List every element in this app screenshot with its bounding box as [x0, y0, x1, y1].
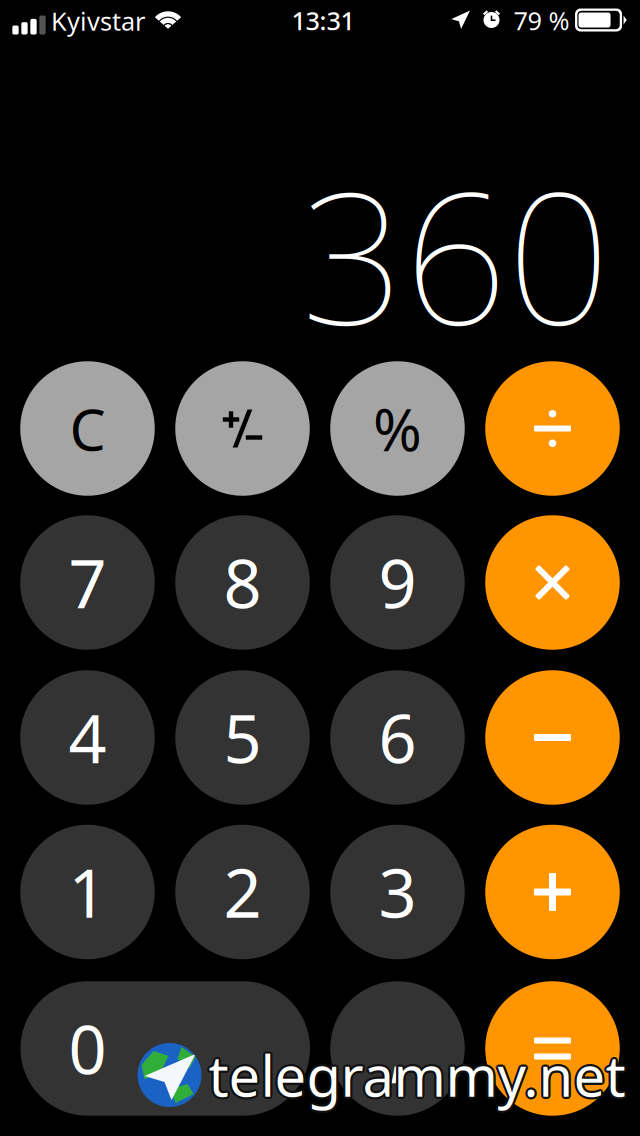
staticText: telegrammy.net [208, 1040, 625, 1114]
staticText: 6 [378, 693, 416, 782]
staticText: telegrammy.net [210, 1039, 627, 1114]
staticText: 13:31 [291, 4, 354, 37]
button[interactable]: Divide [485, 361, 620, 496]
button[interactable]: 1 [20, 825, 155, 959]
staticText: telegrammy.net [207, 1039, 624, 1114]
staticText: % [373, 389, 422, 467]
button[interactable]: C [20, 361, 155, 496]
staticText: , [388, 1004, 406, 1093]
button[interactable]: 8 [175, 515, 310, 650]
staticText: 360 [301, 134, 610, 374]
staticText: telegrammy.net [208, 1038, 625, 1112]
staticText: 8 [223, 538, 261, 627]
staticText: 9 [378, 538, 416, 627]
staticText: C [69, 390, 105, 466]
button[interactable]: Minus [485, 670, 620, 805]
button[interactable]: 6 [330, 670, 465, 805]
button[interactable]: 7 [20, 515, 155, 650]
staticText: 79 % [513, 4, 569, 37]
staticText: 2 [223, 848, 261, 936]
staticText: Kyivstar [51, 4, 145, 38]
staticText: telegrammy.net [208, 1036, 625, 1110]
staticText: telegrammy.net [207, 1036, 624, 1111]
button[interactable]: , [330, 981, 465, 1116]
staticText: 4 [68, 693, 106, 782]
staticText: telegrammy.net [210, 1036, 627, 1111]
staticText: telegrammy.net [211, 1038, 628, 1112]
button[interactable]: 4 [20, 670, 155, 805]
staticText: 7 [68, 538, 106, 627]
button[interactable]: 2 [175, 825, 310, 959]
staticText: 3 [378, 848, 416, 936]
staticText: telegrammy.net [206, 1038, 623, 1112]
button[interactable]: % [330, 361, 465, 496]
button[interactable]: 9 [330, 515, 465, 650]
staticText: 0 [68, 1004, 106, 1093]
button[interactable]: Equals [485, 981, 620, 1116]
button[interactable]: Plus [485, 825, 620, 959]
button[interactable]: 0 [20, 981, 310, 1116]
staticText: 1 [68, 848, 106, 936]
button[interactable]: Multiply [485, 515, 620, 650]
button[interactable]: 3 [330, 825, 465, 959]
button[interactable]: 5 [175, 670, 310, 805]
staticText: 5 [223, 693, 261, 782]
button[interactable]: Plus Minus [175, 361, 310, 496]
